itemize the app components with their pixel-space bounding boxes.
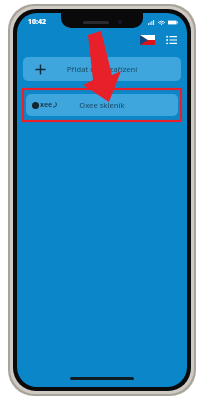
button[interactable]: Menu (164, 33, 179, 47)
staticText: Oxee skleník (64, 100, 140, 110)
staticText: 10:42 (28, 17, 46, 27)
button[interactable]: Language: Czech (138, 33, 157, 47)
button[interactable]: Přidat nové zařízení (23, 57, 181, 81)
button[interactable]: xee (26, 94, 178, 116)
staticText: xee (40, 100, 53, 110)
staticText: Přidat nové zařízení (57, 64, 147, 74)
